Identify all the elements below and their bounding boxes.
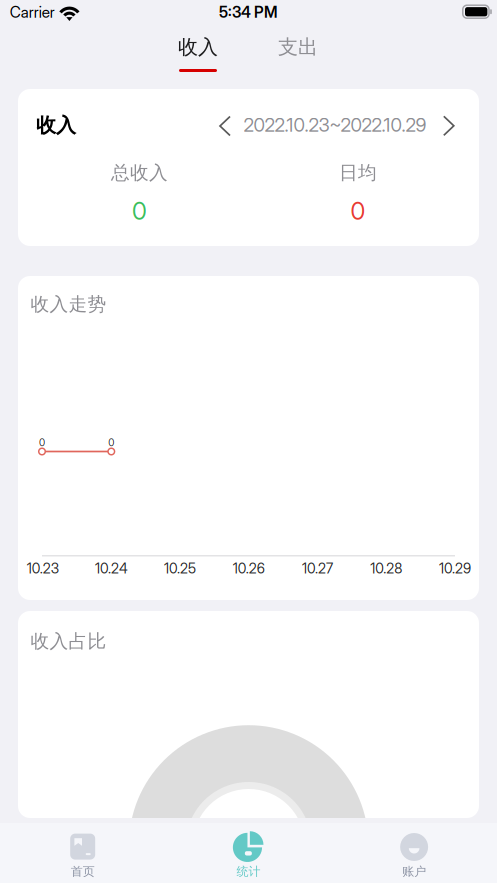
staticText: 10.24 <box>95 560 128 577</box>
staticText: 支出 <box>278 34 318 60</box>
staticText: 总收入 <box>111 161 168 185</box>
button[interactable]: Previous period <box>207 108 243 144</box>
staticText: 10.27 <box>302 560 333 577</box>
staticText: 0 <box>350 196 365 225</box>
staticText: 2022.10.23~2022.10.29 <box>243 114 426 136</box>
staticText: 收入 <box>36 113 76 138</box>
staticText: 收入占比 <box>30 629 106 653</box>
staticText: 0 <box>108 436 114 449</box>
button[interactable]: 首页 <box>0 823 166 883</box>
staticText: 首页 <box>71 864 95 879</box>
staticText: 账户 <box>402 864 426 879</box>
staticText: 0 <box>39 436 45 449</box>
staticText: 0 <box>132 196 147 225</box>
staticText: 10.26 <box>233 560 265 577</box>
staticText: 10.23 <box>27 560 59 577</box>
staticText: 10.29 <box>439 560 471 577</box>
button[interactable]: Next period <box>431 108 467 144</box>
staticText: 5:34 PM <box>219 3 278 21</box>
button[interactable]: 收入 <box>148 28 248 78</box>
staticText: 统计 <box>236 864 260 879</box>
staticText: 10.28 <box>370 560 402 577</box>
staticText: 收入走势 <box>30 292 106 316</box>
staticText: 10.25 <box>164 560 196 577</box>
button[interactable]: 支出 <box>248 28 348 78</box>
button[interactable]: 账户 <box>331 823 497 883</box>
button[interactable]: 统计 <box>166 823 331 883</box>
staticText: 收入 <box>178 34 218 60</box>
staticText: Carrier <box>10 3 55 21</box>
staticText: 日均 <box>339 161 377 185</box>
